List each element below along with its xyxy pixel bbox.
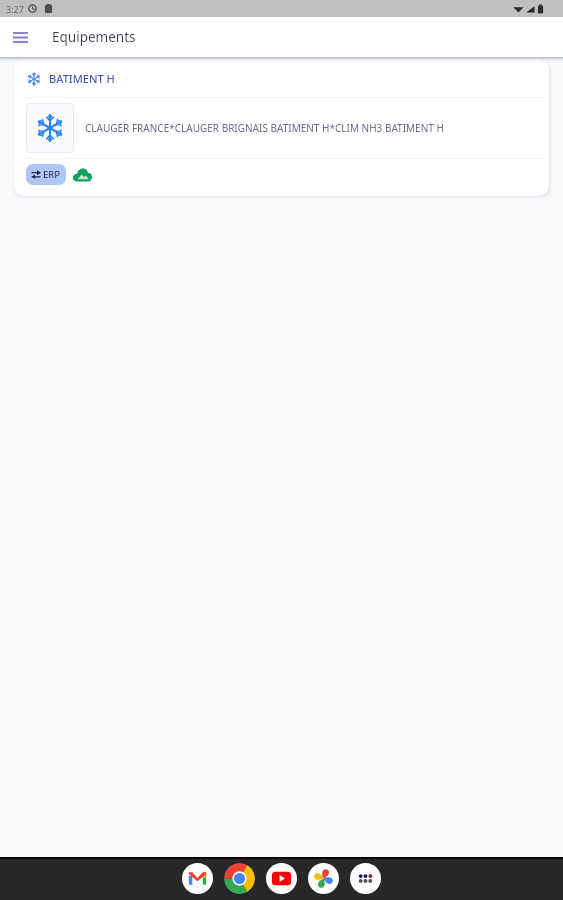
button[interactable]: Google Photos: [308, 863, 339, 894]
staticText: CLAUGER FRANCE*CLAUGER BRIGNAIS BATIMENT…: [85, 121, 444, 135]
button[interactable]: All apps: [350, 863, 381, 894]
staticText: 3:27: [6, 3, 24, 15]
button[interactable]: BATIMENT H: [14, 60, 549, 196]
button[interactable]: Synchronised: [72, 164, 93, 185]
button[interactable]: YouTube: [266, 863, 297, 894]
button[interactable]: ERP: [26, 164, 66, 185]
staticText: BATIMENT H: [49, 71, 115, 86]
button[interactable]: Chrome: [224, 863, 255, 894]
button[interactable]: Gmail: [182, 863, 213, 894]
staticText: Equipements: [52, 28, 136, 46]
button[interactable]: Open navigation menu: [0, 17, 40, 57]
staticText: ERP: [43, 168, 61, 181]
